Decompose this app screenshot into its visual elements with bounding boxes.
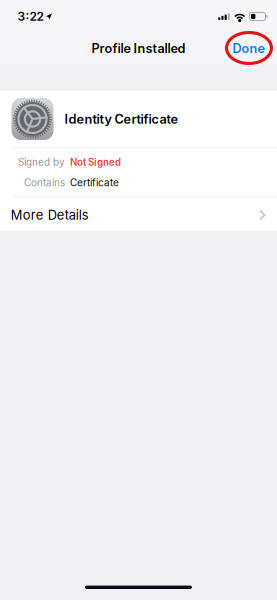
staticText: Identity Certificate (64, 111, 178, 127)
staticText: 3:22 (17, 9, 43, 24)
staticText: Profile Installed (91, 41, 185, 56)
button[interactable]: More Details (0, 197, 277, 231)
staticText: Certificate (70, 177, 119, 189)
staticText: Signed by (18, 156, 65, 168)
staticText: Contains (24, 177, 65, 189)
staticText: Not Signed (70, 156, 121, 168)
staticText: More Details (11, 207, 89, 223)
staticText: Done (232, 41, 264, 56)
button[interactable]: Done (225, 35, 271, 62)
